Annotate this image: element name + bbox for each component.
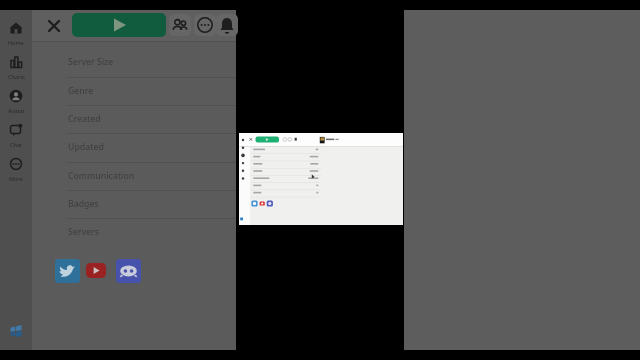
button[interactable]: Chat: [0, 119, 32, 151]
staticText: Badges: [68, 198, 99, 210]
button[interactable]: Home: [0, 17, 32, 49]
staticText: Chat: [10, 141, 22, 148]
button[interactable]: Avatar: [0, 85, 32, 117]
staticText: Home: [8, 39, 24, 46]
staticText: Server Size: [68, 56, 114, 68]
button[interactable]: [72, 13, 166, 37]
staticText: Updated: [68, 141, 104, 153]
staticText: Created: [68, 113, 101, 125]
button[interactable]: [216, 14, 238, 36]
button[interactable]: [194, 14, 216, 36]
button[interactable]: Badges: [32, 190, 236, 218]
button[interactable]: [116, 259, 141, 283]
staticText: Charts: [8, 73, 25, 80]
button[interactable]: [55, 259, 80, 283]
staticText: Genre: [68, 85, 94, 97]
button[interactable]: [86, 263, 106, 278]
staticText: More: [9, 175, 23, 182]
button[interactable]: [169, 14, 191, 36]
button[interactable]: Updated: [32, 133, 236, 161]
button[interactable]: More: [0, 153, 32, 185]
button[interactable]: [46, 18, 63, 34]
staticText: Servers: [68, 226, 99, 238]
button[interactable]: Communication: [32, 162, 236, 190]
button[interactable]: Charts: [0, 51, 32, 83]
staticText: Avatar: [8, 107, 25, 114]
staticText: Communication: [68, 170, 135, 182]
